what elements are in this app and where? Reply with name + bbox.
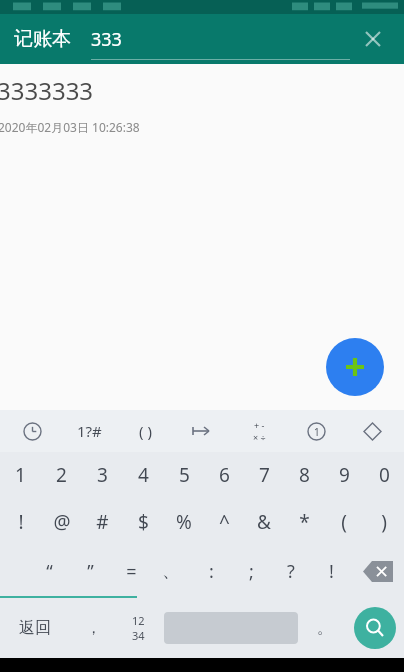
button[interactable]: ” — [70, 546, 111, 596]
button[interactable]: 、 — [151, 546, 191, 596]
staticText: $ — [138, 509, 149, 535]
button[interactable]: Clear search — [350, 16, 396, 62]
button[interactable]: “ — [29, 546, 70, 596]
button[interactable]: Numbers — [291, 410, 341, 452]
button[interactable]: 4 — [123, 452, 164, 498]
button[interactable]: # — [82, 498, 123, 546]
button[interactable]: ; — [231, 546, 271, 596]
staticText: % — [176, 509, 192, 535]
button[interactable]: ! — [0, 498, 41, 546]
staticText: 、 — [162, 560, 180, 583]
staticText: 8 — [299, 462, 310, 488]
button[interactable]: 3 — [82, 452, 123, 498]
button[interactable]: Math — [234, 410, 284, 452]
staticText: ? — [287, 559, 295, 584]
staticText: “ — [46, 559, 53, 584]
button[interactable]: Brackets — [120, 410, 170, 452]
button[interactable]: Recent — [7, 410, 57, 452]
staticText: ! — [329, 559, 334, 584]
button[interactable]: 7 — [244, 452, 284, 498]
staticText: ) — [381, 509, 387, 535]
staticText: 4 — [138, 462, 149, 488]
staticText: 12 — [132, 613, 145, 628]
button[interactable]: 2 — [41, 452, 82, 498]
staticText: 333 — [91, 27, 122, 52]
staticText: 1 — [15, 462, 26, 488]
button[interactable]: ^ — [204, 498, 244, 546]
button[interactable]: ( — [324, 498, 364, 546]
button[interactable]: ， — [70, 598, 116, 658]
staticText: ; — [249, 559, 254, 584]
button[interactable]: Arrows — [177, 410, 227, 452]
button[interactable]: = — [111, 546, 151, 596]
button[interactable]: 。 — [302, 598, 346, 658]
staticText: 2020年02月03日 10:26:38 — [0, 119, 140, 135]
staticText: 34 — [132, 628, 145, 643]
staticText: 2 — [56, 462, 67, 488]
button[interactable]: ? — [271, 546, 311, 596]
staticText: * — [299, 509, 310, 535]
button[interactable]: ! — [311, 546, 351, 596]
button[interactable]: & — [244, 498, 284, 546]
staticText: ” — [87, 559, 94, 584]
staticText: 记账本 — [14, 27, 71, 51]
button[interactable]: 1 — [0, 452, 41, 498]
staticText: ! — [18, 509, 24, 535]
button[interactable]: 9 — [324, 452, 364, 498]
staticText: 3 — [97, 462, 108, 488]
button[interactable]: 5 — [164, 452, 204, 498]
staticText: 3333333 — [0, 74, 94, 107]
staticText: 5 — [179, 462, 190, 488]
staticText: 。 — [317, 619, 332, 638]
staticText: : — [209, 559, 214, 584]
button[interactable]: Shapes — [347, 410, 397, 452]
button[interactable]: $ — [123, 498, 164, 546]
staticText: ， — [86, 619, 101, 638]
button[interactable]: 0 — [364, 452, 404, 498]
staticText: 7 — [259, 462, 270, 488]
button[interactable]: Symbols — [64, 410, 114, 452]
button[interactable]: Search — [354, 607, 396, 649]
button[interactable]: : — [191, 546, 231, 596]
staticText: ( — [341, 509, 347, 535]
button[interactable]: 333 — [91, 14, 350, 64]
staticText: ( ) — [139, 421, 152, 441]
staticText: × ÷ — [253, 431, 266, 443]
staticText: & — [257, 509, 271, 535]
staticText: @ — [53, 509, 71, 535]
button[interactable]: 6 — [204, 452, 244, 498]
staticText: 9 — [339, 462, 350, 488]
staticText: 1 — [314, 425, 320, 439]
button[interactable]: 返回 — [0, 598, 70, 658]
button[interactable]: Backspace — [351, 546, 404, 596]
staticText: 1?# — [77, 421, 102, 441]
staticText: 返回 — [19, 618, 51, 638]
button[interactable]: % — [164, 498, 204, 546]
button[interactable]: 8 — [284, 452, 324, 498]
staticText: 6 — [219, 462, 230, 488]
staticText: + - — [254, 419, 265, 431]
staticText: = — [126, 559, 137, 584]
button[interactable]: ) — [364, 498, 404, 546]
staticText: ^ — [219, 509, 230, 535]
button[interactable]: Add entry — [326, 338, 384, 396]
staticText: 0 — [379, 462, 390, 488]
staticText: # — [96, 509, 109, 535]
button[interactable]: * — [284, 498, 324, 546]
button[interactable]: @ — [41, 498, 82, 546]
button[interactable]: Numbers — [116, 598, 160, 658]
